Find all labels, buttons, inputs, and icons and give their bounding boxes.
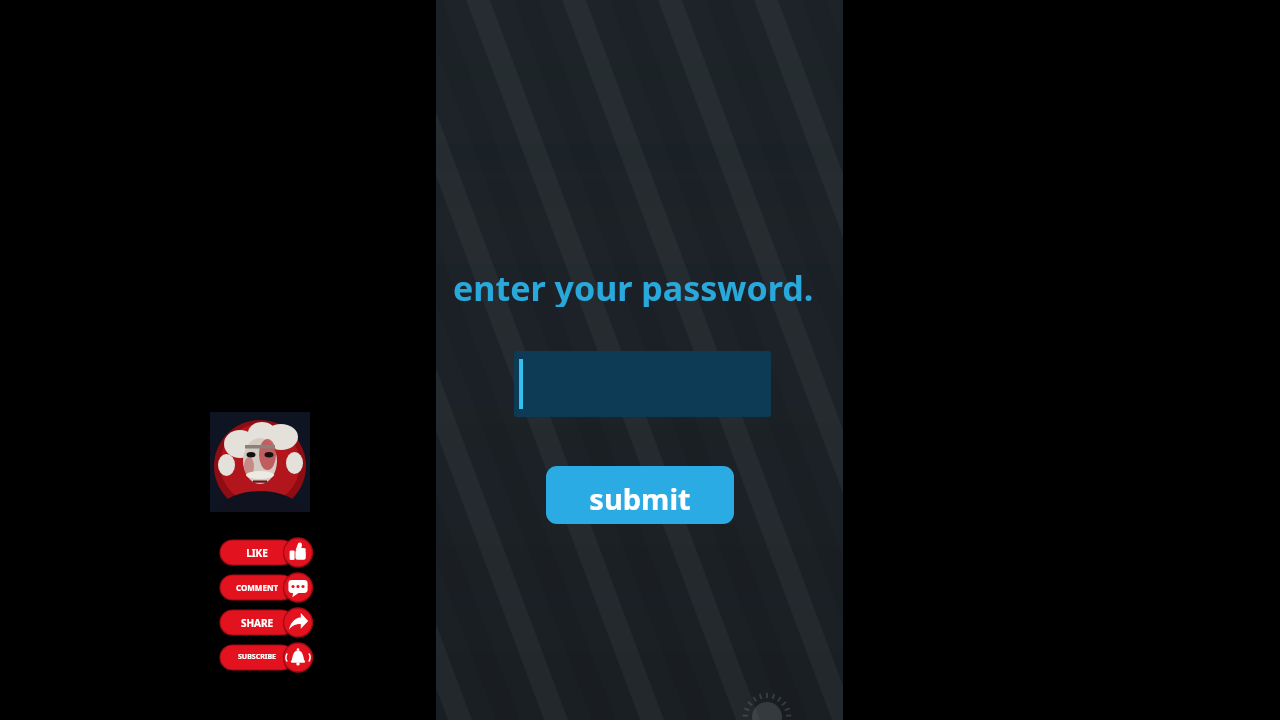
button[interactable]: COMMENT (220, 575, 314, 600)
button[interactable]: SHARE (220, 610, 314, 635)
button[interactable]: Password input field (514, 351, 771, 417)
button[interactable]: Channel avatar (210, 412, 310, 512)
staticText: submit (546, 479, 734, 515)
button[interactable]: SUBSCRIBE (220, 645, 314, 670)
button[interactable]: submit (546, 466, 734, 524)
staticText: enter your password. (453, 265, 843, 307)
button[interactable]: LIKE (220, 540, 314, 565)
staticText: LIKE (220, 546, 294, 562)
staticText: COMMENT (220, 582, 294, 598)
staticText: SUBSCRIBE (220, 652, 294, 668)
staticText: SHARE (220, 616, 294, 632)
